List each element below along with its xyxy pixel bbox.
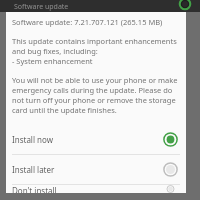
staticText: Install now [12, 134, 53, 145]
button[interactable]: Update progress [178, 0, 192, 12]
button[interactable]: Install later [6, 155, 186, 184]
staticText: You will not be able to use your phone o… [12, 75, 178, 115]
staticText: This update contains important enhanceme… [12, 36, 178, 66]
button[interactable]: Install now [6, 125, 186, 154]
staticText: Don't install [12, 185, 57, 193]
staticText: Software update: 7.21.707.121 (265.15 MB… [12, 17, 163, 27]
staticText: Install later [12, 164, 55, 175]
staticText: Software update [14, 2, 69, 12]
button[interactable]: Don't install [6, 185, 186, 193]
